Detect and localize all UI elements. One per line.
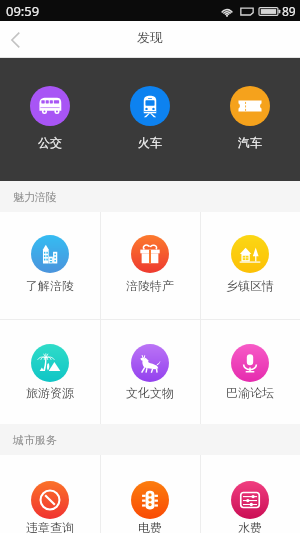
staticText: 旅游资源 [26,385,74,400]
button[interactable]: 水费 [200,455,300,533]
button[interactable]: Back [0,21,30,58]
button[interactable]: 旅游资源 [0,320,100,424]
staticText: 文化文物 [126,385,174,400]
staticText: 水费 [238,520,262,533]
staticText: 违章查询 [26,520,74,533]
staticText: 城市服务 [13,433,57,447]
staticText: 汽车 [238,135,262,150]
button[interactable]: 违章查询 [0,455,100,533]
button[interactable]: 涪陵特产 [100,212,200,319]
button[interactable]: 巴渝论坛 [200,320,300,424]
staticText: 89 [282,3,296,19]
button[interactable]: 了解涪陵 [0,212,100,319]
staticText: 09:59 [6,2,40,20]
button[interactable]: 电费 [100,455,200,533]
button[interactable]: 乡镇区情 [200,212,300,319]
staticText: 了解涪陵 [26,278,74,293]
staticText: 涪陵特产 [126,278,174,293]
button[interactable]: 汽车 [200,58,300,150]
staticText: 魅力涪陵 [13,190,57,204]
staticText: 发现 [137,29,163,45]
button[interactable]: 公交 [0,58,100,150]
button[interactable]: 火车 [100,58,200,150]
button[interactable]: 文化文物 [100,320,200,424]
staticText: 乡镇区情 [226,278,274,293]
staticText: 公交 [38,135,62,150]
staticText: 电费 [138,520,162,533]
staticText: 巴渝论坛 [226,385,274,400]
staticText: 火车 [138,135,162,150]
